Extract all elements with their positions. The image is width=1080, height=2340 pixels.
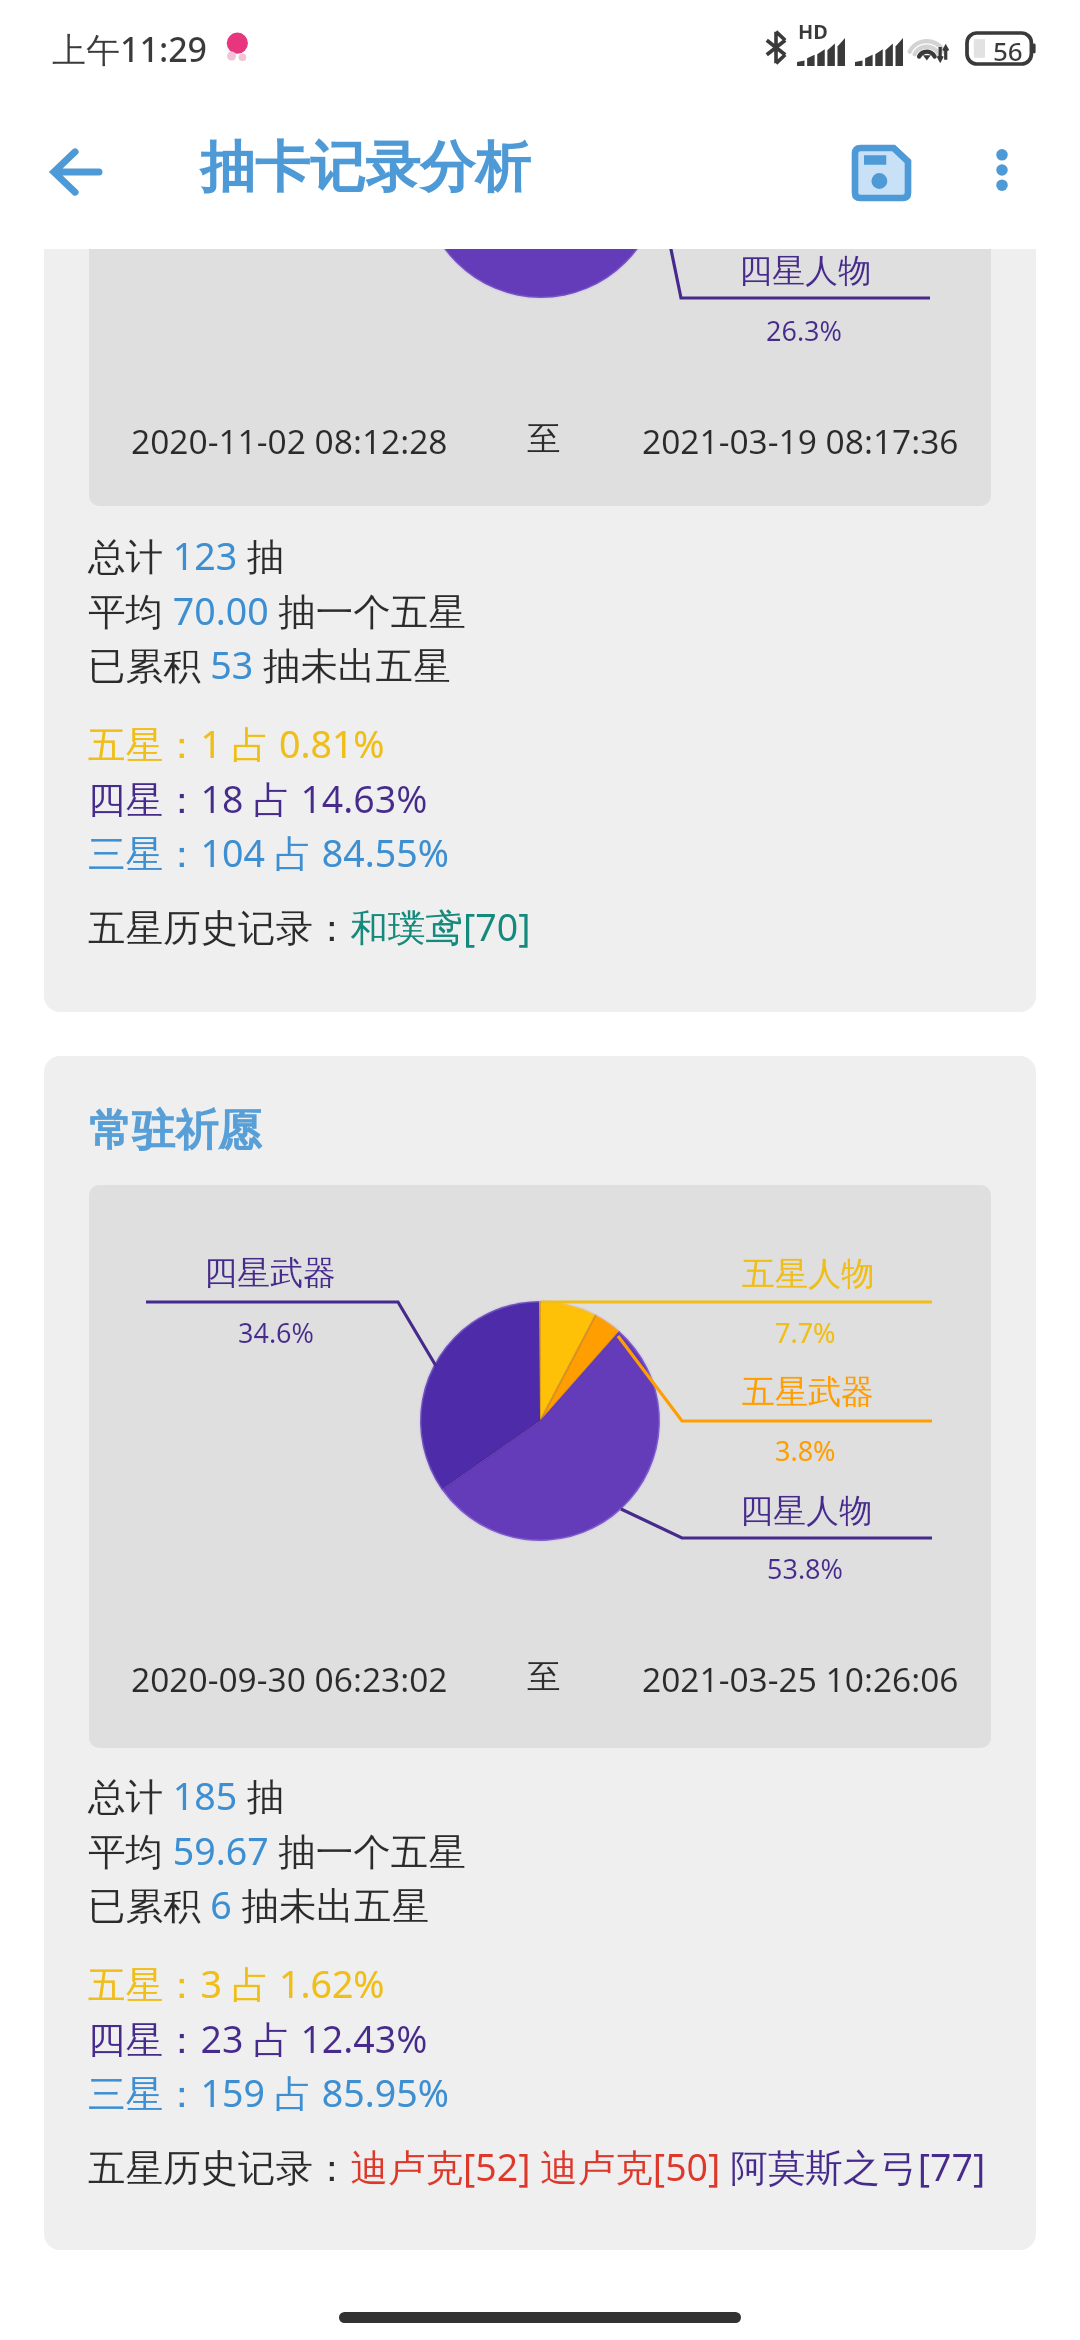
button[interactable]: Back [28,124,124,220]
staticText: 平均 70.00 抽一个五星 [88,585,466,636]
staticText: 抽卡记录分析 [200,133,530,202]
staticText: 五星历史记录：迪卢克[52] 迪卢克[50] 阿莫斯之弓[77] [88,2141,986,2192]
staticText: 至 [527,1656,561,1698]
staticText: 2020-11-02 08:12:28 [131,418,448,464]
staticText: 56 [993,33,1023,68]
staticText: 上午11:29 [52,26,208,72]
staticText: 已累积 53 抽未出五星 [88,639,451,690]
staticText: 2021-03-25 10:26:06 [642,1656,959,1702]
staticText: 26.3% [766,312,843,349]
staticText: 五星人物 [742,1253,874,1295]
staticText: HD [798,18,828,45]
staticText: 三星：104 占 84.55% [88,827,449,878]
staticText: 总计 185 抽 [88,1770,285,1821]
staticText: 五星武器 [742,1371,874,1413]
staticText: 四星武器 [204,1252,336,1294]
staticText: 四星：18 占 14.63% [88,773,428,824]
staticText: 四星人物 [740,1490,872,1532]
staticText: 常驻祈愿 [89,1104,261,1158]
staticText: 总计 123 抽 [88,530,285,581]
staticText: 34.6% [238,1314,315,1351]
button[interactable]: More options [952,120,1052,220]
staticText: 2021-03-19 08:17:36 [642,418,959,464]
staticText: 四星：23 占 12.43% [88,2013,428,2064]
staticText: 3.8% [775,1432,836,1469]
staticText: 2020-09-30 06:23:02 [131,1656,448,1702]
staticText: 五星历史记录：和璞鸢[70] [88,901,531,952]
button[interactable]: 常驻祈愿 [44,1056,1036,2250]
button[interactable]: Save [831,123,931,223]
staticText: 三星：159 占 85.95% [88,2067,449,2118]
staticText: 至 [527,418,561,460]
staticText: 53.8% [767,1550,844,1587]
staticText: 平均 59.67 抽一个五星 [88,1825,466,1876]
staticText: 五星：3 占 1.62% [88,1958,385,2009]
staticText: 五星：1 占 0.81% [88,718,385,769]
button[interactable]: 四星人物 [44,249,1036,1012]
staticText: 7.7% [775,1314,836,1351]
staticText: 已累积 6 抽未出五星 [88,1879,429,1930]
staticText: 四星人物 [739,250,871,292]
